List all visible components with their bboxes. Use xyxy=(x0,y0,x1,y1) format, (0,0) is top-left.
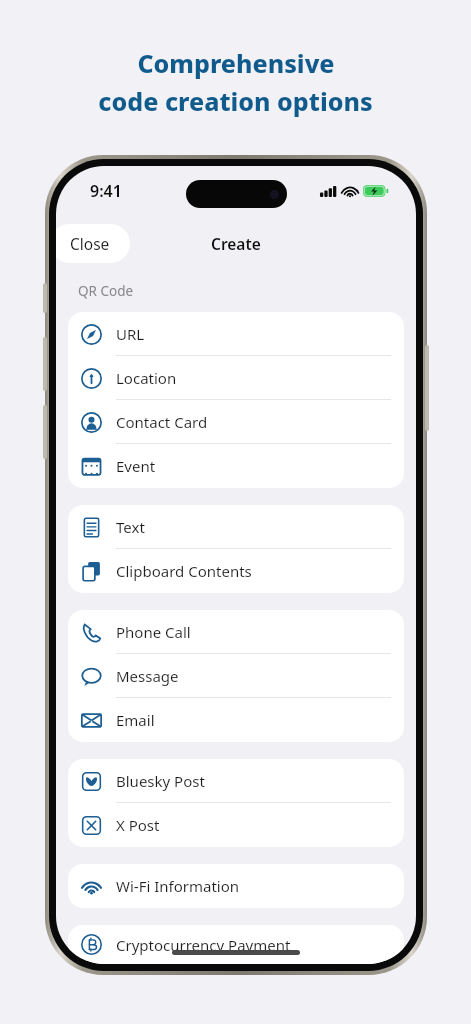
staticText: Phone Call xyxy=(116,622,191,642)
button[interactable]: Email xyxy=(68,698,404,742)
staticText: Event xyxy=(116,456,156,476)
button[interactable]: Cryptocurrency Payment xyxy=(68,925,404,964)
staticText: Contact Card xyxy=(116,412,208,432)
button[interactable]: Wi-Fi Information xyxy=(68,864,404,908)
staticText: QR Code xyxy=(78,282,134,300)
button[interactable]: Phone Call xyxy=(68,610,404,654)
staticText: Create xyxy=(211,233,261,254)
staticText: Close xyxy=(70,233,110,254)
staticText: Cryptocurrency Payment xyxy=(116,935,291,955)
staticText: Bluesky Post xyxy=(116,771,205,791)
button[interactable]: Text xyxy=(68,505,404,549)
staticText: X Post xyxy=(116,815,160,835)
button[interactable]: URL xyxy=(68,312,404,356)
staticText: URL xyxy=(116,324,145,344)
button[interactable]: X Post xyxy=(68,803,404,847)
staticText: Text xyxy=(116,517,145,537)
staticText: Location xyxy=(116,368,177,388)
button[interactable]: Contact Card xyxy=(68,400,404,444)
staticText: 9:41 xyxy=(90,180,122,202)
button[interactable]: Location xyxy=(68,356,404,400)
staticText: Comprehensive xyxy=(137,46,335,80)
staticText: Clipboard Contents xyxy=(116,561,252,581)
button[interactable]: Message xyxy=(68,654,404,698)
button[interactable]: Event xyxy=(68,444,404,488)
staticText: code creation options xyxy=(98,84,373,118)
button[interactable]: Bluesky Post xyxy=(68,759,404,803)
button[interactable]: Clipboard Contents xyxy=(68,549,404,593)
staticText: Message xyxy=(116,666,179,686)
button[interactable]: Close xyxy=(56,224,130,263)
staticText: Wi-Fi Information xyxy=(116,876,240,896)
staticText: Email xyxy=(116,710,155,730)
